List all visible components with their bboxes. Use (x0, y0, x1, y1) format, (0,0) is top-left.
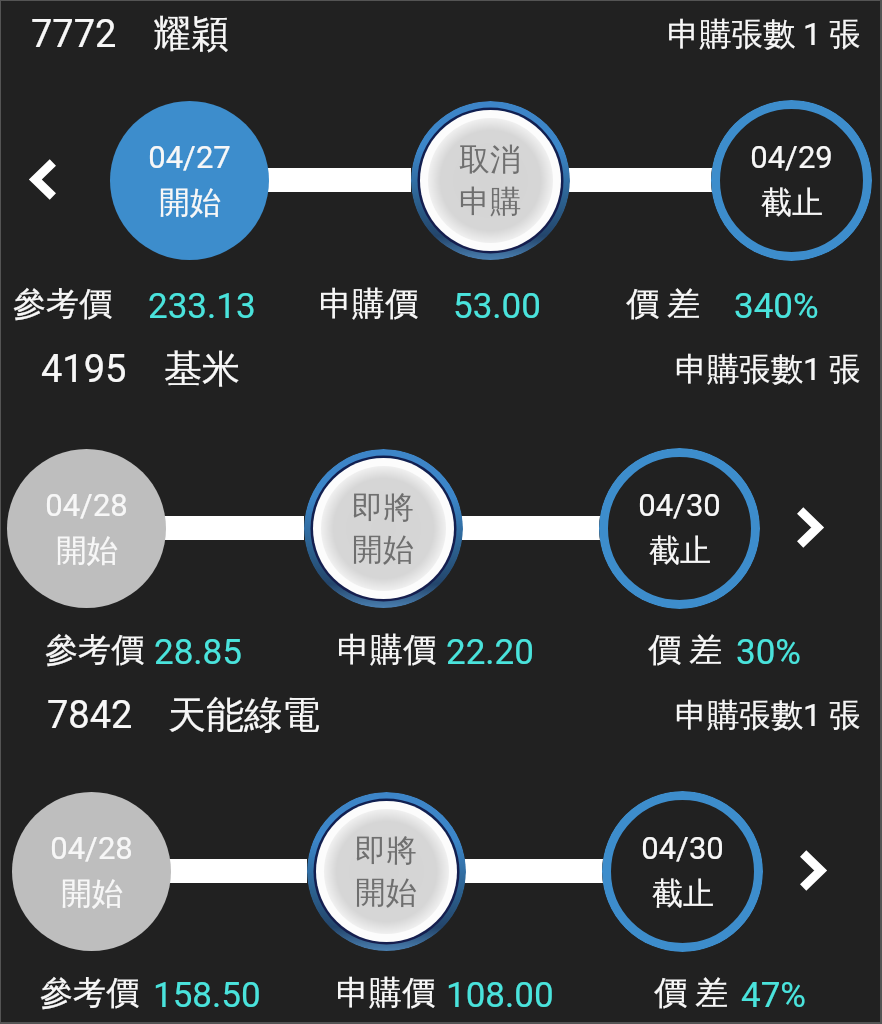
button[interactable] (602, 791, 763, 952)
staticText: 53.00 (453, 286, 541, 327)
staticText: 開始 (159, 183, 221, 222)
staticText: 基米 (164, 345, 240, 393)
staticText: 開始 (61, 874, 123, 913)
staticText: 04/28 (45, 487, 128, 523)
button[interactable]: Next (782, 493, 838, 561)
button[interactable] (12, 792, 171, 951)
staticText: 價 差 (648, 629, 723, 671)
staticText: 233.13 (148, 286, 256, 327)
staticText: 申購張數 1 張 (667, 14, 861, 54)
staticText: 申購價 (319, 283, 418, 325)
staticText: 開始 (352, 530, 414, 569)
staticText: 04/27 (148, 139, 231, 175)
button[interactable] (307, 792, 466, 951)
staticText: 開始 (355, 873, 417, 912)
staticText: 04/30 (641, 830, 724, 866)
button[interactable] (599, 448, 760, 609)
staticText: 天能綠電 (168, 691, 320, 739)
staticText: 108.00 (446, 975, 554, 1016)
staticText: 截止 (649, 531, 711, 570)
staticText: 申購價 (336, 972, 435, 1014)
staticText: 參考價 (40, 972, 139, 1014)
staticText: 即將 (352, 488, 414, 527)
staticText: 價 差 (626, 283, 701, 325)
button[interactable] (7, 449, 166, 608)
staticText: 申購 (459, 182, 521, 221)
staticText: 參考價 (45, 629, 144, 671)
staticText: 申購張數1 張 (675, 695, 861, 735)
staticText: 即將 (355, 831, 417, 870)
button[interactable]: Next (785, 836, 841, 904)
staticText: 340% (734, 286, 819, 327)
button[interactable] (110, 101, 269, 260)
staticText: 158.50 (153, 975, 261, 1016)
staticText: 耀穎 (153, 10, 229, 58)
staticText: 04/28 (50, 830, 133, 866)
staticText: 30% (736, 632, 801, 673)
staticText: 7842 (47, 693, 133, 738)
staticText: 截止 (652, 874, 714, 913)
staticText: 截止 (761, 183, 823, 222)
staticText: 04/29 (750, 139, 833, 175)
button[interactable] (304, 449, 463, 608)
button[interactable] (411, 101, 570, 260)
button[interactable] (711, 100, 872, 261)
staticText: 47% (741, 975, 806, 1016)
staticText: 價 差 (654, 972, 729, 1014)
staticText: 22.20 (446, 632, 534, 673)
staticText: 申購張數1 張 (675, 349, 861, 389)
staticText: 28.85 (154, 632, 242, 673)
staticText: 開始 (56, 531, 118, 570)
staticText: 04/30 (638, 487, 721, 523)
staticText: 參考價 (13, 283, 112, 325)
staticText: 7772 (31, 12, 117, 57)
staticText: 4195 (41, 347, 127, 392)
staticText: 申購價 (337, 629, 436, 671)
button[interactable]: Previous (14, 145, 70, 213)
staticText: 取消 (459, 140, 521, 179)
